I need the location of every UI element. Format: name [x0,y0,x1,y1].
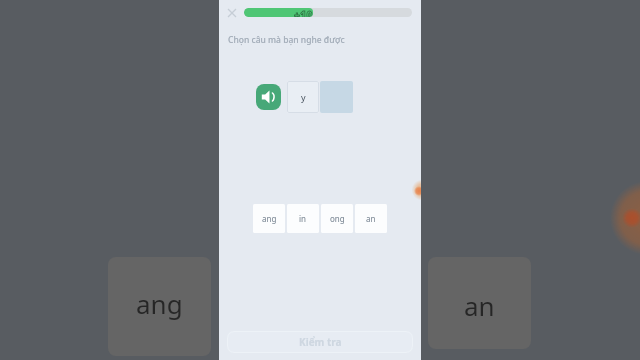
staticText: an [366,213,376,224]
staticText: ang [262,213,277,224]
button[interactable]: ang [108,257,211,356]
button[interactable]: ong [321,204,353,233]
button[interactable]: ang [253,204,285,233]
button[interactable]: Close [224,5,239,20]
button[interactable]: y [287,81,319,113]
staticText: ong [330,213,345,224]
button[interactable]: Play audio [256,84,281,110]
staticText: Chọn câu mà bạn nghe được [228,34,345,46]
button[interactable]: an [428,257,531,349]
button[interactable]: an [355,204,387,233]
staticText: +10 [294,8,313,17]
button[interactable]: in [287,204,319,233]
staticText: y [301,91,306,103]
staticText: Kiểm tra [299,335,342,349]
staticText: an [464,288,495,323]
staticText: ang [136,286,183,321]
button[interactable]: Kiểm tra [227,331,413,353]
staticText: in [299,213,307,224]
